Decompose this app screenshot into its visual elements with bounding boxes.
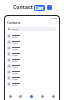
button[interactable]: [5, 75, 59, 81]
button[interactable]: Search: [7, 27, 57, 31]
button[interactable]: [5, 51, 59, 57]
button[interactable]: Tab 3: [37, 92, 48, 100]
button[interactable]: List: [34, 5, 45, 11]
staticText: List: [35, 5, 44, 11]
staticText: Contacts: [7, 21, 21, 25]
button[interactable]: [5, 81, 59, 87]
button[interactable]: Tab 0: [5, 92, 15, 100]
button[interactable]: Add contact: [47, 5, 52, 10]
button[interactable]: [5, 33, 59, 39]
button[interactable]: [5, 63, 59, 69]
staticText: Contact: [13, 4, 33, 11]
button[interactable]: Tab 2: [26, 92, 37, 100]
button[interactable]: Tab 4: [48, 92, 59, 100]
button[interactable]: [5, 69, 59, 75]
button[interactable]: [5, 57, 59, 63]
button[interactable]: Tab 1: [15, 92, 26, 100]
button[interactable]: [5, 39, 59, 45]
button[interactable]: [5, 45, 59, 51]
